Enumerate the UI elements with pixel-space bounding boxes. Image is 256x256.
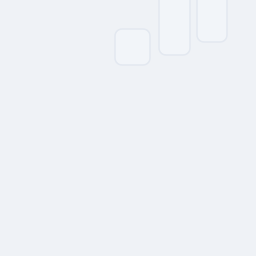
button[interactable]: Chart bar — [115, 29, 150, 65]
button[interactable]: Chart bar — [159, 0, 190, 55]
button[interactable]: Chart bar — [197, 0, 227, 42]
